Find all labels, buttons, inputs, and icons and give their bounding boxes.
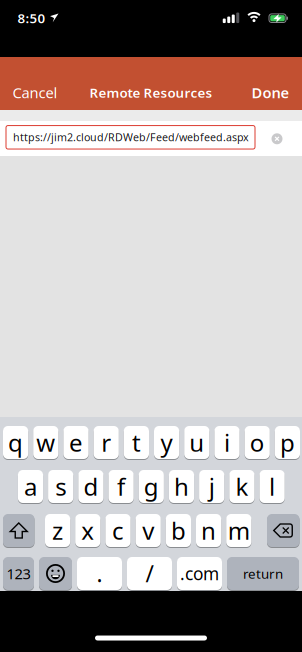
staticText: f <box>117 471 125 502</box>
button[interactable]: .com <box>177 556 222 591</box>
button[interactable]: n <box>196 513 221 548</box>
staticText: o <box>250 427 265 458</box>
button[interactable]: s <box>48 469 73 504</box>
button[interactable]: t <box>124 425 149 460</box>
staticText: l <box>269 471 275 502</box>
staticText: Done <box>251 83 289 102</box>
staticText: .com <box>180 562 219 585</box>
staticText: w <box>36 427 55 458</box>
button[interactable]: Shift <box>3 513 34 548</box>
button[interactable]: x <box>75 513 100 548</box>
button[interactable]: u <box>184 425 209 460</box>
staticText: Cancel <box>12 83 57 102</box>
button[interactable]: w <box>33 425 58 460</box>
staticText: g <box>144 471 159 502</box>
button[interactable]: Delete <box>267 513 299 548</box>
button[interactable]: v <box>136 513 161 548</box>
staticText: n <box>201 515 216 546</box>
staticText: b <box>171 515 186 546</box>
button[interactable]: p <box>275 425 300 460</box>
button[interactable]: / <box>127 556 172 591</box>
staticText: s <box>55 471 66 502</box>
button[interactable]: Emoji <box>39 556 72 591</box>
staticText: e <box>69 427 83 458</box>
staticText: . <box>96 558 102 588</box>
staticText: a <box>24 471 37 502</box>
staticText: k <box>235 471 248 502</box>
staticText: / <box>145 558 153 588</box>
staticText: q <box>8 427 23 458</box>
staticText: c <box>112 515 124 546</box>
staticText: https://jim2.cloud/RDWeb/Feed/webfeed.as… <box>13 130 249 144</box>
button[interactable]: m <box>226 513 251 548</box>
button[interactable]: a <box>18 469 43 504</box>
staticText: d <box>83 471 98 502</box>
button[interactable]: o <box>245 425 270 460</box>
button[interactable]: r <box>94 425 119 460</box>
button[interactable]: Cancel <box>6 77 63 108</box>
staticText: z <box>52 515 63 546</box>
staticText: x <box>81 515 94 546</box>
button[interactable]: l <box>259 469 285 504</box>
button[interactable]: f <box>108 469 134 504</box>
button[interactable]: d <box>78 469 103 504</box>
button[interactable]: i <box>214 425 240 460</box>
staticText: i <box>224 427 230 458</box>
button[interactable]: e <box>63 425 89 460</box>
staticText: Remote Resources <box>89 84 212 101</box>
button[interactable]: return <box>227 556 299 591</box>
staticText: j <box>209 471 215 502</box>
staticText: return <box>243 565 283 582</box>
staticText: r <box>101 427 111 458</box>
staticText: t <box>132 427 141 458</box>
button[interactable]: g <box>139 469 164 504</box>
button[interactable]: h <box>169 469 194 504</box>
button[interactable]: z <box>45 513 70 548</box>
staticText: h <box>174 471 189 502</box>
button[interactable]: y <box>154 425 179 460</box>
button[interactable]: 123 <box>3 556 34 591</box>
button[interactable]: Done <box>245 77 295 108</box>
staticText: 123 <box>6 564 30 583</box>
button[interactable]: Clear text <box>269 131 285 147</box>
button[interactable]: k <box>229 469 254 504</box>
staticText: m <box>228 515 250 546</box>
staticText: p <box>280 427 295 458</box>
button[interactable]: . <box>77 556 122 591</box>
staticText: u <box>189 427 204 458</box>
button[interactable]: c <box>105 513 131 548</box>
staticText: y <box>161 427 173 458</box>
staticText: 8:50 <box>17 9 45 27</box>
button[interactable]: b <box>166 513 191 548</box>
staticText: v <box>142 515 154 546</box>
button[interactable]: q <box>3 425 28 460</box>
button[interactable]: j <box>199 469 224 504</box>
